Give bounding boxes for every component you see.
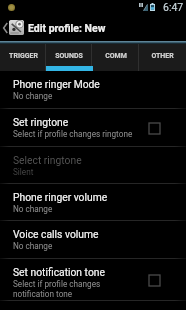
button[interactable]: Phone ringer volume bbox=[0, 184, 186, 221]
button[interactable]: Set notification tone bbox=[0, 259, 186, 301]
staticText: 6:47 bbox=[163, 1, 184, 13]
staticText: Set ringtone bbox=[13, 116, 69, 128]
button[interactable]: SOUNDS bbox=[46, 44, 92, 71]
staticText: Silent bbox=[13, 167, 34, 177]
button[interactable]: Set ringtone bbox=[0, 109, 186, 147]
button[interactable]: COMM bbox=[92, 44, 139, 71]
button[interactable]: Select ringtone bbox=[0, 147, 186, 184]
staticText: Phone ringer volume bbox=[13, 191, 108, 203]
staticText: Phone ringer Mode bbox=[13, 78, 100, 90]
staticText: No change bbox=[13, 204, 53, 214]
staticText: Voice calls volume bbox=[13, 228, 99, 240]
button[interactable]: TRIGGER bbox=[0, 44, 46, 71]
button[interactable]: Navigate up bbox=[0, 14, 186, 41]
button[interactable]: OTHER bbox=[139, 44, 186, 71]
staticText: Select ringtone bbox=[13, 154, 82, 166]
staticText: OTHER bbox=[151, 52, 174, 60]
staticText: Edit profile: New bbox=[28, 22, 106, 34]
staticText: COMM bbox=[105, 52, 127, 60]
staticText: Select if profile changes ringtone bbox=[13, 129, 133, 139]
button[interactable]: Phone ringer Mode bbox=[0, 71, 186, 109]
staticText: TRIGGER bbox=[9, 52, 38, 60]
staticText: No change bbox=[13, 91, 53, 101]
staticText: No change bbox=[13, 241, 53, 251]
staticText: SOUNDS bbox=[55, 52, 83, 60]
staticText: Select if profile changes notification t… bbox=[13, 279, 101, 299]
staticText: Set notification tone bbox=[13, 266, 105, 278]
button[interactable]: Voice calls volume bbox=[0, 221, 186, 259]
